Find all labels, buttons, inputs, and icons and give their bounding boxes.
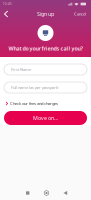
button[interactable]: Back — [56, 187, 75, 199]
button[interactable]: Cancel — [74, 8, 91, 20]
button[interactable]: Back — [0, 8, 13, 20]
staticText: Move on… — [33, 114, 58, 122]
staticText: Cancel — [74, 11, 86, 17]
staticText: Full name (as per passport) — [11, 85, 58, 90]
staticText: What do your friends call you? — [8, 45, 82, 52]
button[interactable]: Home — [37, 187, 56, 199]
staticText: First Name — [11, 67, 31, 72]
button[interactable]: Move on… — [4, 111, 87, 125]
staticText: Check our fees and charges — [10, 101, 58, 106]
staticText: 12:45 — [3, 2, 12, 6]
button[interactable]: Recent apps — [18, 187, 37, 199]
staticText: Sign up — [37, 10, 54, 18]
button[interactable]: Check our fees and charges — [0, 101, 91, 106]
